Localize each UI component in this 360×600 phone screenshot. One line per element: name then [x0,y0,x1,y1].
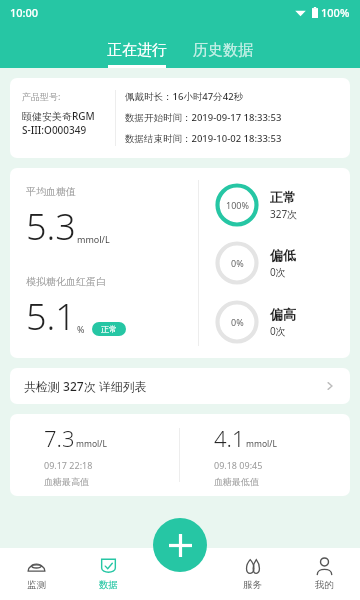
staticText: 0% [231,257,244,269]
staticText: 偏低 [270,247,296,263]
button[interactable]: 正在进行 [99,41,175,68]
staticText: 产品型号: [22,90,61,102]
staticText: 共检测 327次 详细列表 [24,378,147,394]
button[interactable]: 历史数据 [185,41,261,68]
button[interactable]: 监测 [0,548,72,600]
staticText: 历史数据 [193,41,253,60]
staticText: 模拟糖化血红蛋白 [26,275,106,288]
button[interactable]: 我的 [288,548,360,600]
staticText: 颐健安美奇RGM [22,109,95,123]
staticText: 09.17 22:18 [44,459,93,471]
staticText: 5.3 [26,202,76,251]
staticText: S-III:O000349 [22,123,87,137]
staticText: 10:00 [10,5,39,20]
button[interactable]: Add measurement [153,518,207,572]
staticText: 平均血糖值 [26,185,76,198]
staticText: 偏高 [270,306,296,322]
staticText: 327次 [270,207,298,221]
button[interactable]: 共检测 327次 详细列表 [10,368,350,404]
staticText: 数据 [99,579,118,591]
staticText: 服务 [243,579,262,591]
staticText: 0次 [270,265,286,279]
staticText: 佩戴时长：16小时47分42秒 [125,90,244,103]
staticText: mmol/L [77,233,110,245]
button[interactable]: 数据 [72,548,144,600]
staticText: % [77,323,85,335]
staticText: 血糖最低值 [214,476,259,487]
staticText: 100% [321,5,350,20]
staticText: 0次 [270,324,286,338]
staticText: 正常 [270,189,296,205]
staticText: 血糖最高值 [44,476,89,487]
staticText: 数据结束时间：2019-10-02 18:33:53 [125,132,282,145]
staticText: 5.1 [26,292,76,341]
staticText: mmol/L [76,438,107,450]
staticText: 100% [226,199,249,211]
staticText: 7.3 [44,423,75,453]
button[interactable]: 服务 [216,548,288,600]
staticText: mmol/L [246,438,277,450]
staticText: 我的 [315,579,334,591]
staticText: 正常 [101,324,117,334]
staticText: 4.1 [214,423,245,453]
staticText: 监测 [27,579,46,591]
staticText: 0% [231,316,244,328]
staticText: 正在进行 [107,41,167,60]
staticText: 数据开始时间：2019-09-17 18:33:53 [125,111,282,124]
staticText: 09.18 09:45 [214,459,263,471]
